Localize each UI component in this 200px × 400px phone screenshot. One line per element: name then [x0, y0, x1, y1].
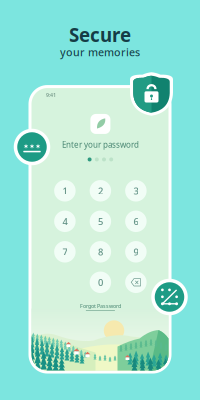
staticText: your memories: [60, 45, 140, 59]
staticText: Secure: [69, 22, 131, 47]
staticText: 5: [98, 215, 103, 227]
staticText: 0: [98, 276, 103, 288]
button[interactable]: 6: [118, 206, 154, 237]
staticText: 1: [62, 185, 67, 197]
staticText: 7: [62, 246, 67, 258]
staticText: Enter your password: [62, 139, 139, 150]
button[interactable]: 8: [83, 237, 118, 267]
staticText: 2: [98, 185, 103, 197]
button[interactable]: 4: [47, 206, 83, 237]
button[interactable]: 0: [83, 267, 118, 298]
button[interactable]: [118, 267, 154, 298]
staticText: 6: [133, 215, 138, 227]
button[interactable]: Password: [13, 128, 50, 165]
button[interactable]: Forgot Password: [80, 302, 121, 311]
button[interactable]: 1: [47, 176, 83, 206]
button[interactable]: 7: [47, 237, 83, 267]
staticText: 3: [133, 185, 138, 197]
staticText: 4: [62, 215, 67, 227]
button[interactable]: Pattern lock: [151, 278, 188, 315]
button[interactable]: 2: [83, 176, 118, 206]
button[interactable]: 3: [118, 176, 154, 206]
staticText: 8: [98, 246, 103, 258]
staticText: Forgot Password: [80, 302, 121, 309]
button[interactable]: 9: [118, 237, 154, 267]
button[interactable]: 5: [83, 206, 118, 237]
staticText: 9:41: [46, 91, 56, 99]
staticText: 9: [133, 246, 138, 258]
